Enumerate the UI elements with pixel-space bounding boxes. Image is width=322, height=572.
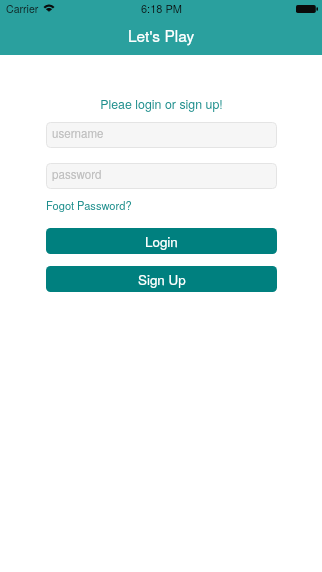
button[interactable]: username — [46, 122, 277, 148]
staticText: Sign Up — [138, 270, 186, 289]
other: Battery full — [296, 5, 318, 13]
staticText: password — [52, 166, 102, 183]
staticText: Fogot Password? — [46, 197, 132, 213]
button[interactable]: Fogot Password? — [46, 197, 132, 213]
staticText: username — [52, 125, 104, 142]
staticText: Pleae login or sign up! — [46, 95, 277, 113]
button[interactable]: password — [46, 163, 277, 189]
button[interactable]: Sign Up — [46, 266, 277, 292]
other: Wi-Fi signal — [44, 2, 54, 12]
staticText: 6:18 PM — [141, 0, 182, 16]
button[interactable]: Login — [46, 228, 277, 254]
staticText: Login — [145, 232, 178, 251]
staticText: Let's Play — [128, 24, 195, 46]
staticText: Carrier — [6, 1, 39, 16]
